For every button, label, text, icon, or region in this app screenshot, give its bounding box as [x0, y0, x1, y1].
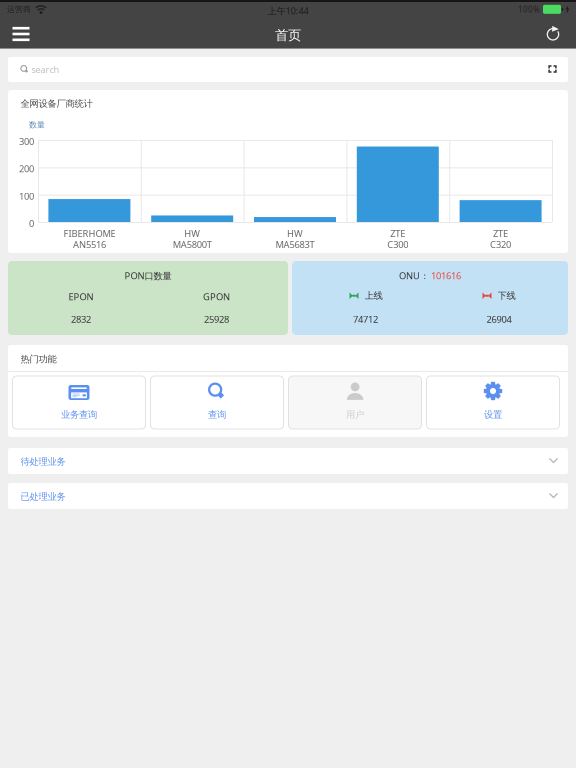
staticText: 待处理业务: [20, 456, 65, 467]
staticText: 100: [19, 190, 34, 202]
staticText: 运营商: [7, 4, 31, 14]
button[interactable]: Refresh: [534, 20, 572, 48]
staticText: 设置: [484, 409, 502, 420]
staticText: 25928: [204, 313, 229, 325]
staticText: AN5516: [73, 238, 106, 251]
staticText: HW: [184, 227, 200, 240]
staticText: 101616: [431, 269, 461, 282]
staticText: 0: [29, 217, 34, 230]
button[interactable]: search: [8, 57, 568, 82]
staticText: 下线: [497, 290, 515, 301]
button[interactable]: 查询: [150, 376, 283, 429]
staticText: 首页: [275, 27, 301, 43]
staticText: HW: [287, 227, 303, 240]
staticText: 数量: [29, 120, 45, 130]
staticText: ZTE: [493, 227, 508, 240]
staticText: 热门功能: [20, 353, 56, 365]
staticText: C320: [490, 238, 511, 251]
staticText: 200: [19, 162, 34, 175]
staticText: 26904: [486, 313, 511, 325]
staticText: search: [31, 63, 59, 76]
staticText: 查询: [208, 409, 226, 420]
staticText: 已处理业务: [20, 491, 65, 502]
staticText: 300: [19, 135, 34, 148]
staticText: EPON: [68, 290, 93, 303]
button[interactable]: 业务查询: [12, 376, 145, 429]
staticText: 100%: [518, 4, 540, 15]
button[interactable]: 已处理业务: [8, 483, 568, 509]
staticText: 全网设备厂商统计: [20, 98, 92, 109]
staticText: 2832: [71, 313, 91, 325]
staticText: 业务查询: [61, 409, 97, 420]
button[interactable]: Menu: [2, 20, 40, 48]
staticText: MA5683T: [275, 238, 314, 251]
button[interactable]: 用户: [288, 376, 421, 429]
staticText: ZTE: [390, 227, 405, 240]
staticText: 用户: [346, 409, 364, 420]
staticText: 74712: [353, 313, 378, 325]
staticText: 上线: [364, 290, 382, 301]
staticText: FIBERHOME: [63, 227, 115, 240]
staticText: GPON: [203, 290, 230, 303]
button[interactable]: 待处理业务: [8, 448, 568, 474]
staticText: 上午10:44: [267, 4, 308, 17]
staticText: MA5800T: [173, 238, 212, 251]
staticText: ONU：: [399, 269, 429, 282]
staticText: C300: [387, 238, 408, 251]
staticText: PON口数量: [124, 269, 171, 282]
button[interactable]: 设置: [426, 376, 559, 429]
